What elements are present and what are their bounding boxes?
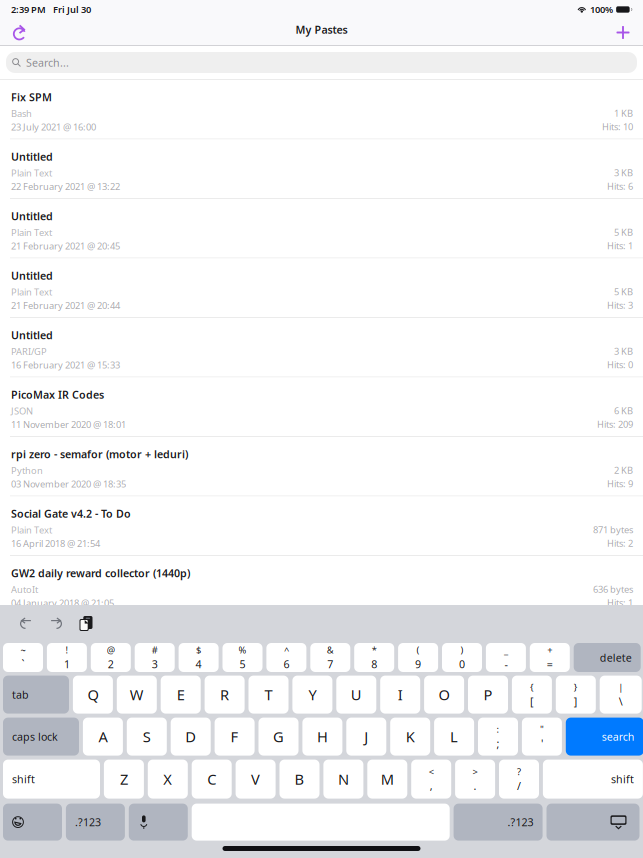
button[interactable]: ^ bbox=[266, 643, 306, 672]
button[interactable]: _ bbox=[486, 643, 526, 672]
button[interactable]: * bbox=[354, 643, 394, 672]
button[interactable]: P bbox=[468, 676, 508, 714]
button[interactable]: @ bbox=[91, 643, 131, 672]
button[interactable]: : bbox=[478, 718, 518, 756]
button[interactable]: W bbox=[117, 676, 157, 714]
button[interactable]: search bbox=[566, 718, 643, 756]
button[interactable]: A bbox=[83, 718, 123, 756]
staticText: 2 KB bbox=[614, 464, 633, 476]
staticText: Untitled bbox=[11, 328, 53, 342]
button[interactable]: $ bbox=[179, 643, 219, 672]
button[interactable]: Untitled bbox=[0, 139, 643, 199]
button[interactable]: O bbox=[424, 676, 464, 714]
button[interactable]: E bbox=[161, 676, 201, 714]
button[interactable]: % bbox=[222, 643, 262, 672]
button[interactable]: Search... bbox=[6, 52, 637, 73]
staticText: 3 KB bbox=[614, 166, 633, 179]
button[interactable]: Refresh bbox=[0, 18, 40, 46]
button[interactable]: R bbox=[205, 676, 245, 714]
button[interactable]: ! bbox=[47, 643, 87, 672]
button[interactable]: delete bbox=[574, 643, 641, 672]
button[interactable]: I bbox=[380, 676, 420, 714]
button[interactable]: T bbox=[248, 676, 288, 714]
button[interactable]: C bbox=[192, 760, 232, 799]
button[interactable]: S bbox=[127, 718, 167, 756]
button[interactable]: V bbox=[236, 760, 276, 799]
staticText: { bbox=[530, 681, 534, 693]
button[interactable]: > bbox=[455, 760, 495, 799]
button[interactable]: Dismiss keyboard bbox=[546, 804, 639, 841]
staticText: 636 bytes bbox=[593, 583, 633, 595]
button[interactable]: Y bbox=[292, 676, 332, 714]
staticText: Hits: 9 bbox=[607, 477, 633, 490]
staticText: 2 bbox=[108, 657, 114, 671]
button[interactable]: { bbox=[512, 676, 552, 714]
staticText: Fix SPM bbox=[11, 90, 52, 104]
button[interactable]: # bbox=[135, 643, 175, 672]
button[interactable]: D bbox=[171, 718, 211, 756]
button[interactable]: ? bbox=[499, 760, 539, 799]
button[interactable]: F bbox=[215, 718, 255, 756]
button[interactable]: < bbox=[411, 760, 451, 799]
button[interactable]: | bbox=[600, 676, 642, 714]
staticText: 16 February 2021 @ 15:33 bbox=[11, 359, 120, 371]
button[interactable]: tab bbox=[3, 676, 69, 714]
button[interactable]: Redo bbox=[44, 612, 68, 636]
staticText: .?123 bbox=[75, 815, 101, 829]
button[interactable]: New paste bbox=[603, 18, 643, 46]
button[interactable]: " bbox=[522, 718, 562, 756]
button[interactable]: Untitled bbox=[0, 318, 643, 377]
button[interactable]: X bbox=[148, 760, 188, 799]
button[interactable]: L bbox=[434, 718, 474, 756]
button[interactable]: PicoMax IR Codes bbox=[0, 377, 643, 437]
staticText: Plain Text bbox=[11, 167, 52, 179]
button[interactable]: & bbox=[310, 643, 350, 672]
staticText: Hits: 6 bbox=[607, 180, 633, 192]
button[interactable]: Q bbox=[73, 676, 113, 714]
button[interactable]: H bbox=[302, 718, 342, 756]
button[interactable]: Z bbox=[104, 760, 144, 799]
button[interactable]: G bbox=[258, 718, 298, 756]
button[interactable]: J bbox=[346, 718, 386, 756]
staticText: Plain Text bbox=[11, 226, 52, 239]
button[interactable]: + bbox=[530, 643, 570, 672]
button[interactable]: M bbox=[367, 760, 407, 799]
button[interactable]: Social Gate v4.2 - To Do bbox=[0, 496, 643, 556]
staticText: shift bbox=[12, 772, 35, 786]
staticText: 9 bbox=[415, 657, 421, 671]
staticText: % bbox=[238, 644, 246, 656]
button[interactable]: Untitled bbox=[0, 258, 643, 318]
button[interactable]: Emoji bbox=[3, 804, 62, 841]
button[interactable]: Dictate bbox=[129, 804, 188, 841]
button[interactable]: ) bbox=[442, 643, 482, 672]
button[interactable]: N bbox=[323, 760, 363, 799]
button[interactable]: } bbox=[556, 676, 596, 714]
button[interactable]: Undo bbox=[14, 612, 38, 636]
staticText: S bbox=[143, 727, 151, 746]
button[interactable]: .?123 bbox=[454, 804, 543, 841]
button[interactable]: rpi zero - semafor (motor + leduri) bbox=[0, 437, 643, 496]
staticText: = bbox=[547, 657, 553, 671]
button[interactable]: shift bbox=[3, 760, 100, 799]
staticText: ; bbox=[496, 736, 499, 750]
button[interactable]: U bbox=[336, 676, 376, 714]
button[interactable]: B bbox=[279, 760, 319, 799]
button[interactable]: Untitled bbox=[0, 199, 643, 258]
staticText: * bbox=[372, 644, 377, 656]
staticText: Bash bbox=[11, 107, 32, 120]
button[interactable]: Fix SPM bbox=[0, 80, 643, 139]
staticText: - bbox=[504, 657, 507, 671]
staticText: 0 bbox=[459, 657, 465, 671]
button[interactable]: Paste bbox=[74, 612, 98, 636]
button[interactable]: GW2 daily reward collector (1440p) bbox=[0, 556, 643, 615]
button[interactable]: ( bbox=[398, 643, 438, 672]
button[interactable] bbox=[192, 804, 450, 841]
button[interactable]: caps lock bbox=[3, 718, 79, 756]
button[interactable]: shift bbox=[543, 760, 643, 799]
staticText: ( bbox=[417, 644, 420, 656]
staticText: PARI/GP bbox=[11, 345, 47, 358]
button[interactable]: K bbox=[390, 718, 430, 756]
button[interactable]: .?123 bbox=[66, 804, 125, 841]
button[interactable]: ~ bbox=[3, 643, 43, 672]
staticText: J bbox=[364, 727, 368, 746]
